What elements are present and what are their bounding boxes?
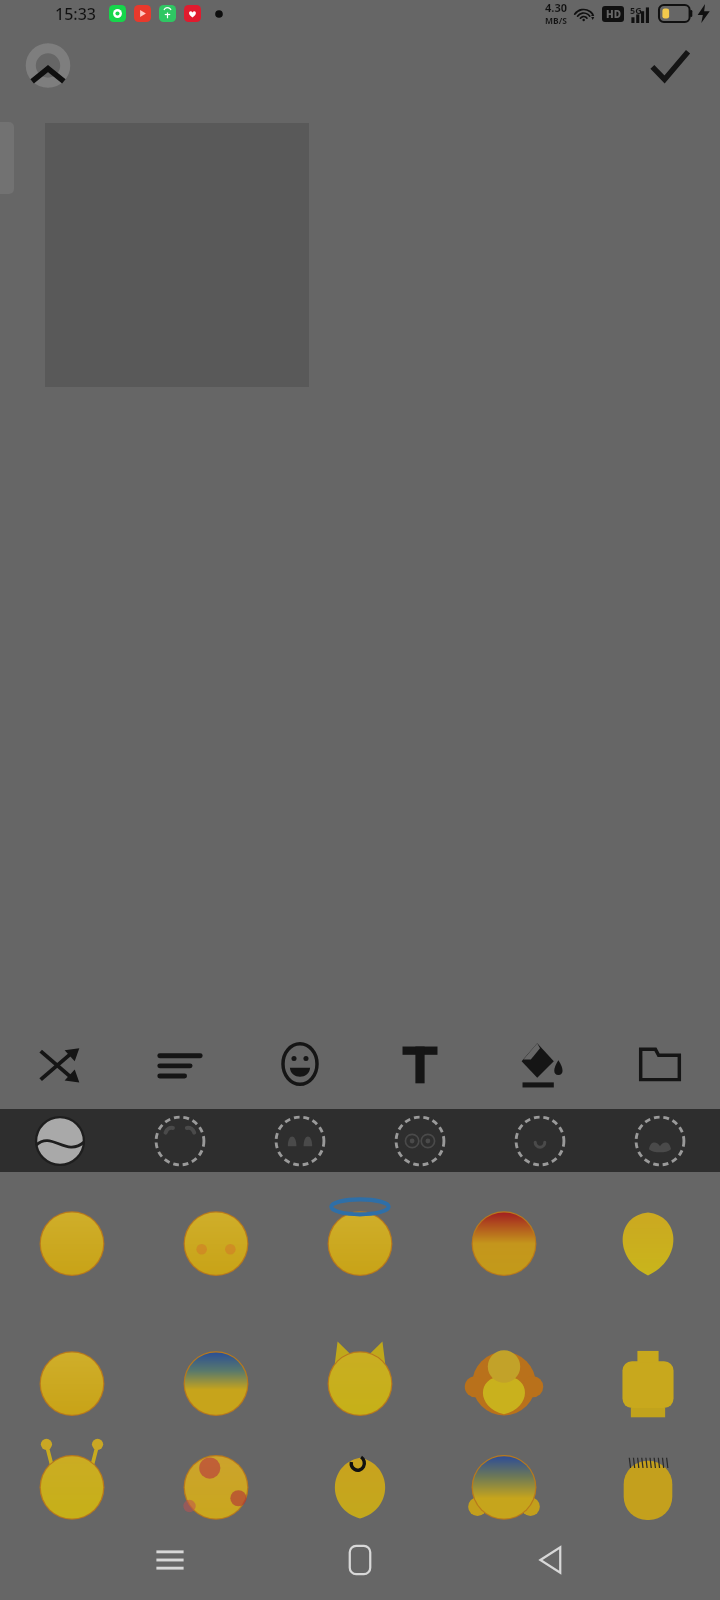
staticText: 15:33 <box>55 3 96 25</box>
button[interactable]: Emoji plain <box>0 1312 144 1452</box>
button[interactable]: Text <box>360 1019 480 1109</box>
button[interactable]: Emoji bluetop <box>144 1312 288 1452</box>
button[interactable]: Back <box>518 1528 582 1592</box>
button[interactable]: Shuffle <box>0 1019 120 1109</box>
button[interactable]: Done <box>642 38 698 94</box>
button[interactable]: Emoji moon <box>288 1452 432 1520</box>
button[interactable]: Emoji pointy <box>576 1172 720 1312</box>
button[interactable]: Eyebrows <box>120 1109 240 1172</box>
staticText: HD <box>606 7 621 21</box>
button[interactable]: Emoji <box>240 1019 360 1109</box>
staticText: 4.30 <box>545 0 567 15</box>
button[interactable]: Pupils <box>360 1109 480 1172</box>
staticText: 5G <box>630 4 642 16</box>
button[interactable]: Emoji monkey <box>432 1312 576 1452</box>
button[interactable]: Folder <box>600 1019 720 1109</box>
button[interactable]: Emoji cat <box>288 1312 432 1452</box>
button[interactable]: Emoji blush <box>144 1172 288 1312</box>
button[interactable]: App logo <box>10 33 86 98</box>
button[interactable]: Emoji lego <box>576 1312 720 1452</box>
button[interactable]: Base <box>0 1109 120 1172</box>
button[interactable]: Align <box>120 1019 240 1109</box>
button[interactable]: Emoji halo <box>288 1172 432 1312</box>
button[interactable]: Emoji plain <box>0 1172 144 1312</box>
button[interactable]: Emoji blood <box>144 1452 288 1520</box>
button[interactable]: Fill color <box>480 1019 600 1109</box>
button[interactable]: Mouth <box>480 1109 600 1172</box>
button[interactable]: Emoji hood <box>432 1452 576 1520</box>
button[interactable]: Recents <box>138 1528 202 1592</box>
button[interactable]: Moustache <box>600 1109 720 1172</box>
button[interactable]: Emoji horns <box>0 1452 144 1520</box>
staticText: MB/S <box>545 15 567 27</box>
button[interactable]: Eyes <box>240 1109 360 1172</box>
button[interactable]: Emoji hair <box>576 1452 720 1520</box>
button[interactable]: Home <box>328 1528 392 1592</box>
button[interactable]: Emoji redtop <box>432 1172 576 1312</box>
